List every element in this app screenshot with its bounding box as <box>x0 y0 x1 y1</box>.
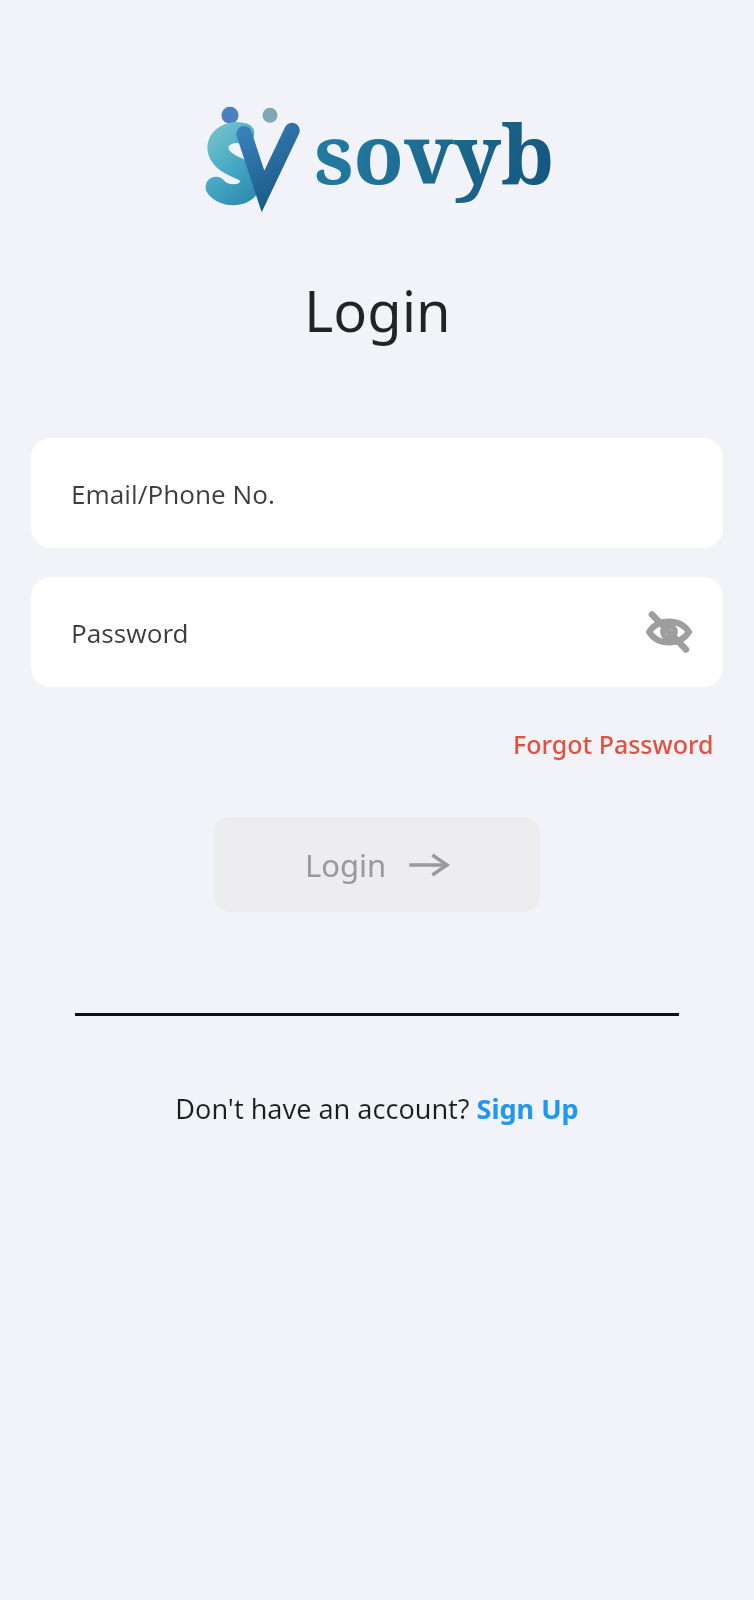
button[interactable]: Password <box>31 577 723 687</box>
staticText: Email/Phone No. <box>71 476 275 511</box>
staticText: sovyb <box>314 96 555 206</box>
staticText: Login <box>305 844 387 886</box>
staticText: Don't have an account? Sign Up <box>175 1090 579 1127</box>
button[interactable]: Email/Phone No. <box>31 438 723 548</box>
button[interactable]: Login <box>214 817 540 912</box>
button[interactable]: Forgot Password <box>509 723 718 765</box>
staticText: Password <box>71 615 189 650</box>
button[interactable]: Don't have an account? Sign Up <box>169 1086 585 1131</box>
staticText: Login <box>304 272 451 348</box>
button[interactable]: Show password <box>641 604 697 660</box>
staticText: Forgot Password <box>513 727 714 761</box>
